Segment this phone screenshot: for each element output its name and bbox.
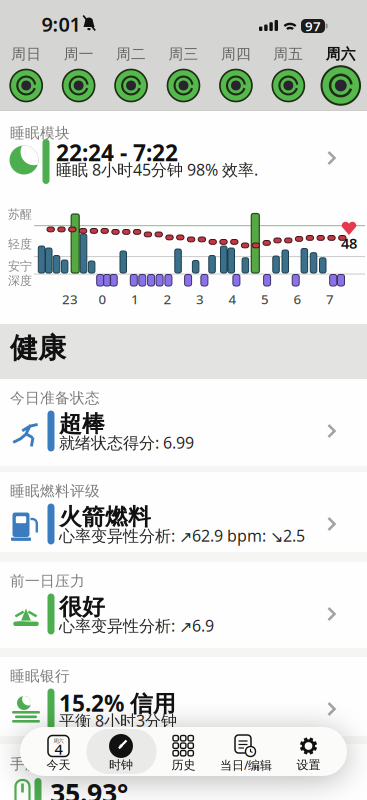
button[interactable]: 周六	[27, 729, 89, 773]
button[interactable]: 周日	[0, 46, 52, 122]
staticText: 15.2% 信用	[59, 688, 176, 718]
staticText: 心率变异性分析: ↗62.9 bpm: ↘2.5	[59, 525, 305, 546]
staticText: 周六	[53, 738, 63, 744]
button[interactable]: 历史	[152, 729, 214, 773]
button[interactable]: 周二	[105, 46, 157, 122]
button[interactable]: 当日/编辑	[215, 729, 277, 773]
staticText: 35.93°	[50, 775, 128, 800]
staticText: 1	[131, 290, 139, 308]
staticText: 4	[228, 290, 236, 308]
staticText: 23	[62, 290, 78, 308]
staticText: 安宁	[8, 259, 32, 274]
button[interactable]: 周四	[210, 46, 262, 122]
staticText: 6	[293, 290, 301, 308]
button[interactable]: 周六	[315, 46, 367, 122]
button[interactable]: 22:24 - 7:22	[0, 111, 367, 189]
staticText: 周日	[11, 45, 41, 63]
staticText: 97	[305, 17, 321, 35]
staticText: 7	[326, 290, 334, 308]
staticText: 健康	[10, 331, 66, 365]
staticText: 4	[54, 739, 62, 759]
staticText: 睡眠银行	[10, 667, 70, 685]
button[interactable]: 前一日压力	[0, 562, 367, 648]
staticText: 超棒	[59, 410, 105, 438]
staticText: 5	[261, 290, 269, 308]
button[interactable]: 周一	[53, 46, 105, 122]
staticText: 3	[196, 290, 204, 308]
staticText: 48	[341, 233, 357, 253]
staticText: 火箭燃料	[59, 503, 151, 531]
staticText: 历史	[171, 758, 195, 772]
button[interactable]: 周三	[157, 46, 209, 122]
staticText: 周六	[326, 45, 356, 63]
staticText: 周三	[168, 45, 198, 63]
button[interactable]: 睡眠银行	[0, 657, 367, 736]
staticText: 0	[98, 290, 106, 308]
staticText: 睡眠模块	[10, 124, 70, 142]
staticText: 周一	[64, 45, 94, 63]
staticText: 轻度	[8, 237, 32, 252]
button[interactable]: 设置	[277, 729, 339, 773]
staticText: 手腕温度	[10, 755, 70, 773]
staticText: 设置	[296, 758, 320, 772]
staticText: 当日/编辑	[220, 757, 272, 773]
staticText: 2	[163, 290, 171, 308]
staticText: 很好	[59, 593, 105, 621]
staticText: 心率变异性分析: ↗6.9	[59, 615, 214, 636]
staticText: 苏醒	[8, 207, 32, 222]
button[interactable]: 时钟	[90, 729, 152, 773]
staticText: 周二	[116, 45, 146, 63]
staticText: 时钟	[109, 758, 133, 772]
staticText: 睡眠 8小时45分钟 98% 效率.	[56, 159, 258, 180]
staticText: 周五	[273, 45, 303, 63]
staticText: 周四	[221, 45, 251, 63]
staticText: 就绪状态得分: 6.99	[59, 432, 194, 453]
button[interactable]: 睡眠燃料评级	[0, 472, 367, 552]
staticText: 今日准备状态	[10, 389, 100, 407]
staticText: 前一日压力	[10, 572, 85, 590]
button[interactable]: 今日准备状态	[0, 379, 367, 466]
staticText: 22:24 - 7:22	[56, 137, 178, 168]
staticText: 9:01	[41, 11, 80, 37]
button[interactable]: 周五	[262, 46, 314, 122]
staticText: 今天	[46, 758, 70, 772]
staticText: 深度	[8, 273, 32, 288]
staticText: 睡眠燃料评级	[10, 482, 100, 500]
staticText: 平衡 8小时3分钟	[59, 710, 177, 731]
